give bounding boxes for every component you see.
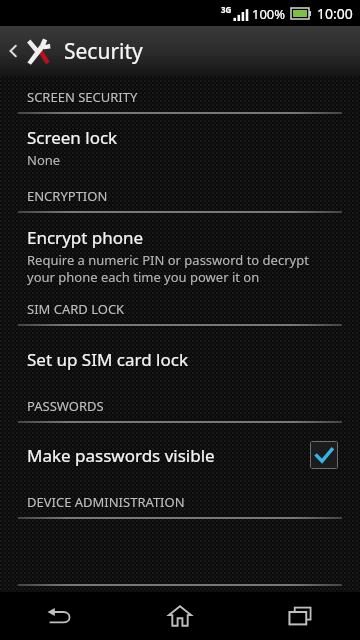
staticText: Set up SIM card lock	[27, 348, 188, 371]
button[interactable]: Encrypt phone	[0, 226, 360, 286]
button[interactable]: Screen lock	[0, 126, 360, 169]
button[interactable]: Set up SIM card lock	[0, 348, 360, 371]
staticText: 100%	[252, 5, 286, 23]
staticText: Make passwords visible	[27, 444, 215, 467]
button[interactable]: Recent apps	[240, 592, 360, 640]
button[interactable]: Home	[120, 592, 240, 640]
staticText: 3G	[221, 4, 232, 15]
staticText: Require a numeric PIN or password to dec…	[27, 251, 338, 286]
button[interactable]: Back	[0, 592, 120, 640]
staticText: SIM CARD LOCK	[27, 300, 125, 318]
staticText: Screen lock	[27, 126, 118, 149]
staticText: 10:00	[317, 4, 353, 23]
staticText: DEVICE ADMINISTRATION	[27, 493, 185, 511]
button[interactable]: Make passwords visible	[0, 441, 360, 469]
staticText: Encrypt phone	[27, 226, 144, 249]
staticText: ENCRYPTION	[27, 187, 108, 205]
staticText: Security	[64, 37, 143, 66]
staticText: SCREEN SECURITY	[27, 88, 138, 106]
staticText: None	[27, 151, 61, 169]
button[interactable]: Back to settings	[0, 26, 360, 76]
staticText: PASSWORDS	[27, 397, 104, 415]
